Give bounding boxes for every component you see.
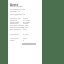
staticText: 920	[23, 37, 27, 40]
staticText: 0	[23, 39, 25, 42]
staticText: 84 Harbour Rd	[10, 8, 26, 11]
staticText: Subtotal	[10, 33, 19, 36]
staticText: Dublin, IE	[10, 10, 20, 13]
staticText: Billed to	[10, 22, 19, 25]
staticText: 4,250	[23, 33, 29, 36]
staticText: Nova	[23, 22, 29, 25]
staticText: 450	[23, 28, 27, 31]
staticText: Invoice no	[10, 17, 21, 20]
staticText: Paid	[10, 39, 15, 42]
staticText: Acme Studio	[10, 5, 23, 8]
staticText: Design work	[10, 24, 23, 27]
staticText: VAT 23%	[10, 37, 19, 40]
staticText: Issued	[10, 19, 17, 22]
staticText: 12 Mar	[23, 19, 31, 22]
staticText: 0042	[23, 17, 29, 20]
staticText: Due date	[10, 21, 20, 24]
staticText: 2,400	[23, 26, 29, 29]
staticText: Development	[10, 26, 24, 29]
staticText: 26 Mar	[23, 21, 31, 24]
staticText: Acme	[10, 3, 19, 7]
staticText: 1,200	[23, 24, 29, 27]
staticText: hello@acme.io	[10, 13, 26, 16]
staticText: QA testing	[10, 28, 21, 31]
